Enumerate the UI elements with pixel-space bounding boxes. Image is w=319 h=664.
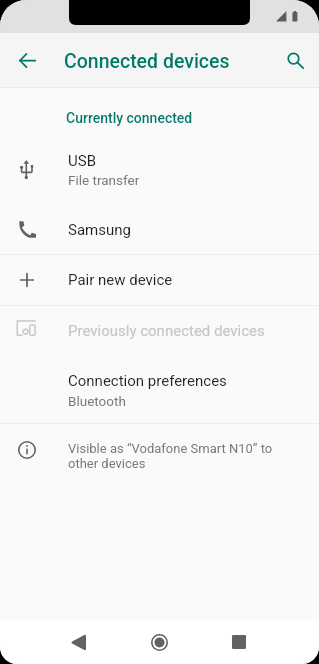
staticText: Connection preferences xyxy=(68,372,227,390)
button[interactable] xyxy=(0,204,319,254)
staticText: File transfer xyxy=(68,172,140,188)
button[interactable]: Navigate up xyxy=(7,40,47,80)
button[interactable] xyxy=(0,255,319,305)
staticText: Previously connected devices xyxy=(68,322,265,340)
button[interactable] xyxy=(0,424,319,480)
staticText: Pair new device xyxy=(68,271,173,289)
button[interactable]: Search xyxy=(275,40,315,80)
button[interactable] xyxy=(0,352,319,422)
staticText: Visible as “Vodafone Smart N10” to other… xyxy=(68,441,273,471)
button[interactable] xyxy=(0,306,319,350)
button[interactable]: Recent apps xyxy=(217,620,261,664)
button[interactable]: Home xyxy=(137,620,181,664)
staticText: Samsung xyxy=(68,221,131,239)
staticText: Connected devices xyxy=(64,50,230,73)
button[interactable]: Back xyxy=(57,620,101,664)
staticText: Bluetooth xyxy=(68,393,126,409)
staticText: USB xyxy=(68,152,96,170)
button[interactable] xyxy=(0,139,319,201)
staticText: Currently connected xyxy=(66,110,193,126)
